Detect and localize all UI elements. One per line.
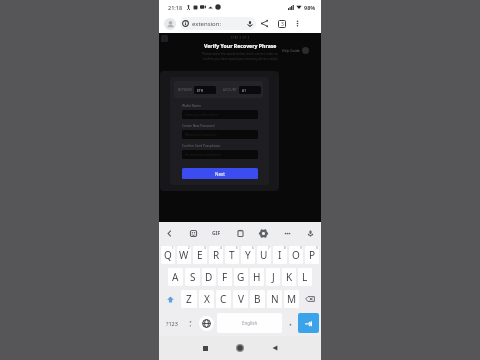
button[interactable]: Logo [161, 35, 168, 42]
staticText: S [190, 270, 196, 284]
button[interactable]: B [250, 290, 265, 308]
staticText: H [253, 270, 261, 284]
button[interactable]: Re-enter your passphrase [182, 150, 258, 159]
button[interactable]: Home [230, 338, 250, 358]
button[interactable]: O [289, 246, 303, 264]
staticText: P [309, 248, 316, 262]
staticText: Q [164, 248, 172, 262]
staticText: extension: [192, 20, 222, 28]
button[interactable]: I [273, 246, 287, 264]
button[interactable]: Settings [257, 227, 270, 240]
button[interactable]: Shift [160, 288, 180, 310]
button[interactable]: F [218, 268, 232, 286]
staticText: #1 [242, 88, 247, 92]
button[interactable]: P [305, 246, 319, 264]
staticText: 4 [220, 246, 222, 250]
staticText: 8 [284, 246, 286, 250]
button[interactable]: Tabs [276, 18, 287, 29]
staticText: D [205, 270, 213, 284]
staticText: Next [215, 171, 225, 177]
staticText: Please enter the words below in the corr… [202, 52, 278, 61]
staticText: STEP 2 OF 3 [231, 36, 250, 40]
staticText: O [292, 248, 300, 262]
staticText: T [229, 248, 235, 262]
button[interactable]: T [225, 246, 239, 264]
button[interactable]: Switch language [199, 316, 214, 331]
button[interactable]: Stickers [187, 227, 200, 240]
button[interactable]: E [193, 246, 207, 264]
button[interactable]: W [177, 246, 191, 264]
staticText: Enter your wallet name [185, 113, 218, 117]
button[interactable]: C [216, 290, 231, 308]
staticText: N [271, 292, 279, 306]
button[interactable]: #1 [239, 86, 261, 94]
button[interactable]: ETH [194, 86, 216, 94]
staticText: X [204, 292, 210, 306]
staticText: E [197, 248, 203, 262]
staticText: Help Guide [282, 48, 300, 53]
button[interactable]: Next [182, 168, 258, 179]
button[interactable]: Period [282, 313, 298, 333]
staticText: I [278, 248, 282, 262]
button[interactable]: Enter your wallet name [182, 110, 258, 119]
button[interactable]: GIF [210, 227, 223, 240]
button[interactable]: Back [265, 338, 285, 358]
button[interactable]: Help Guide [282, 47, 309, 54]
button[interactable]: S [185, 268, 200, 286]
button[interactable]: K [282, 268, 296, 286]
button[interactable]: J [266, 268, 280, 286]
button[interactable]: Voice input [304, 227, 317, 240]
button[interactable]: Q [161, 246, 175, 264]
staticText: W [179, 248, 189, 262]
button[interactable]: Y [241, 246, 255, 264]
button[interactable]: X [199, 290, 214, 308]
button[interactable]: M [284, 290, 299, 308]
staticText: Re-enter your passphrase [185, 153, 222, 157]
staticText: GIF [212, 230, 221, 237]
button[interactable]: ?123 [162, 313, 182, 333]
staticText: 5 [236, 246, 238, 250]
button[interactable]: Share [259, 18, 270, 29]
staticText: K [286, 270, 293, 284]
staticText: F [222, 270, 228, 284]
staticText: 2 [188, 246, 190, 250]
button[interactable]: Comma [182, 313, 199, 333]
button[interactable]: extension: [182, 17, 254, 30]
staticText: 98% [304, 4, 316, 11]
button[interactable]: U [257, 246, 271, 264]
button[interactable]: L [298, 268, 312, 286]
staticText: J [272, 270, 275, 284]
button[interactable]: More options [292, 18, 303, 29]
button[interactable]: Back [163, 227, 176, 240]
button[interactable]: V [233, 290, 248, 308]
button[interactable]: English [217, 313, 282, 333]
button[interactable]: Recents [195, 338, 215, 358]
staticText: Verify Your Recovery Phrase [204, 42, 277, 49]
button[interactable]: R [209, 246, 223, 264]
staticText: L [302, 270, 308, 284]
button[interactable]: N [267, 290, 282, 308]
button[interactable]: G [234, 268, 248, 286]
staticText: R [213, 248, 220, 262]
button[interactable]: D [202, 268, 216, 286]
button[interactable]: Enter [298, 313, 319, 333]
staticText: ACCOUNT [223, 88, 237, 92]
staticText: B [254, 292, 261, 306]
button[interactable]: H [250, 268, 264, 286]
staticText: English [242, 320, 258, 326]
staticText: 3 [281, 21, 284, 28]
staticText: A [172, 270, 179, 284]
staticText: Z [186, 292, 192, 306]
button[interactable]: A [168, 268, 183, 286]
button[interactable]: Z [181, 290, 197, 308]
staticText: Create New Password [182, 124, 215, 128]
staticText: V [238, 292, 244, 306]
staticText: 6 [252, 246, 254, 250]
button[interactable]: Backspace [300, 288, 320, 310]
button[interactable]: Profile [164, 18, 176, 30]
button[interactable]: More [281, 227, 294, 240]
staticText: 3 [204, 246, 206, 250]
button[interactable]: Clipboard [234, 227, 247, 240]
staticText: ?123 [166, 320, 178, 327]
